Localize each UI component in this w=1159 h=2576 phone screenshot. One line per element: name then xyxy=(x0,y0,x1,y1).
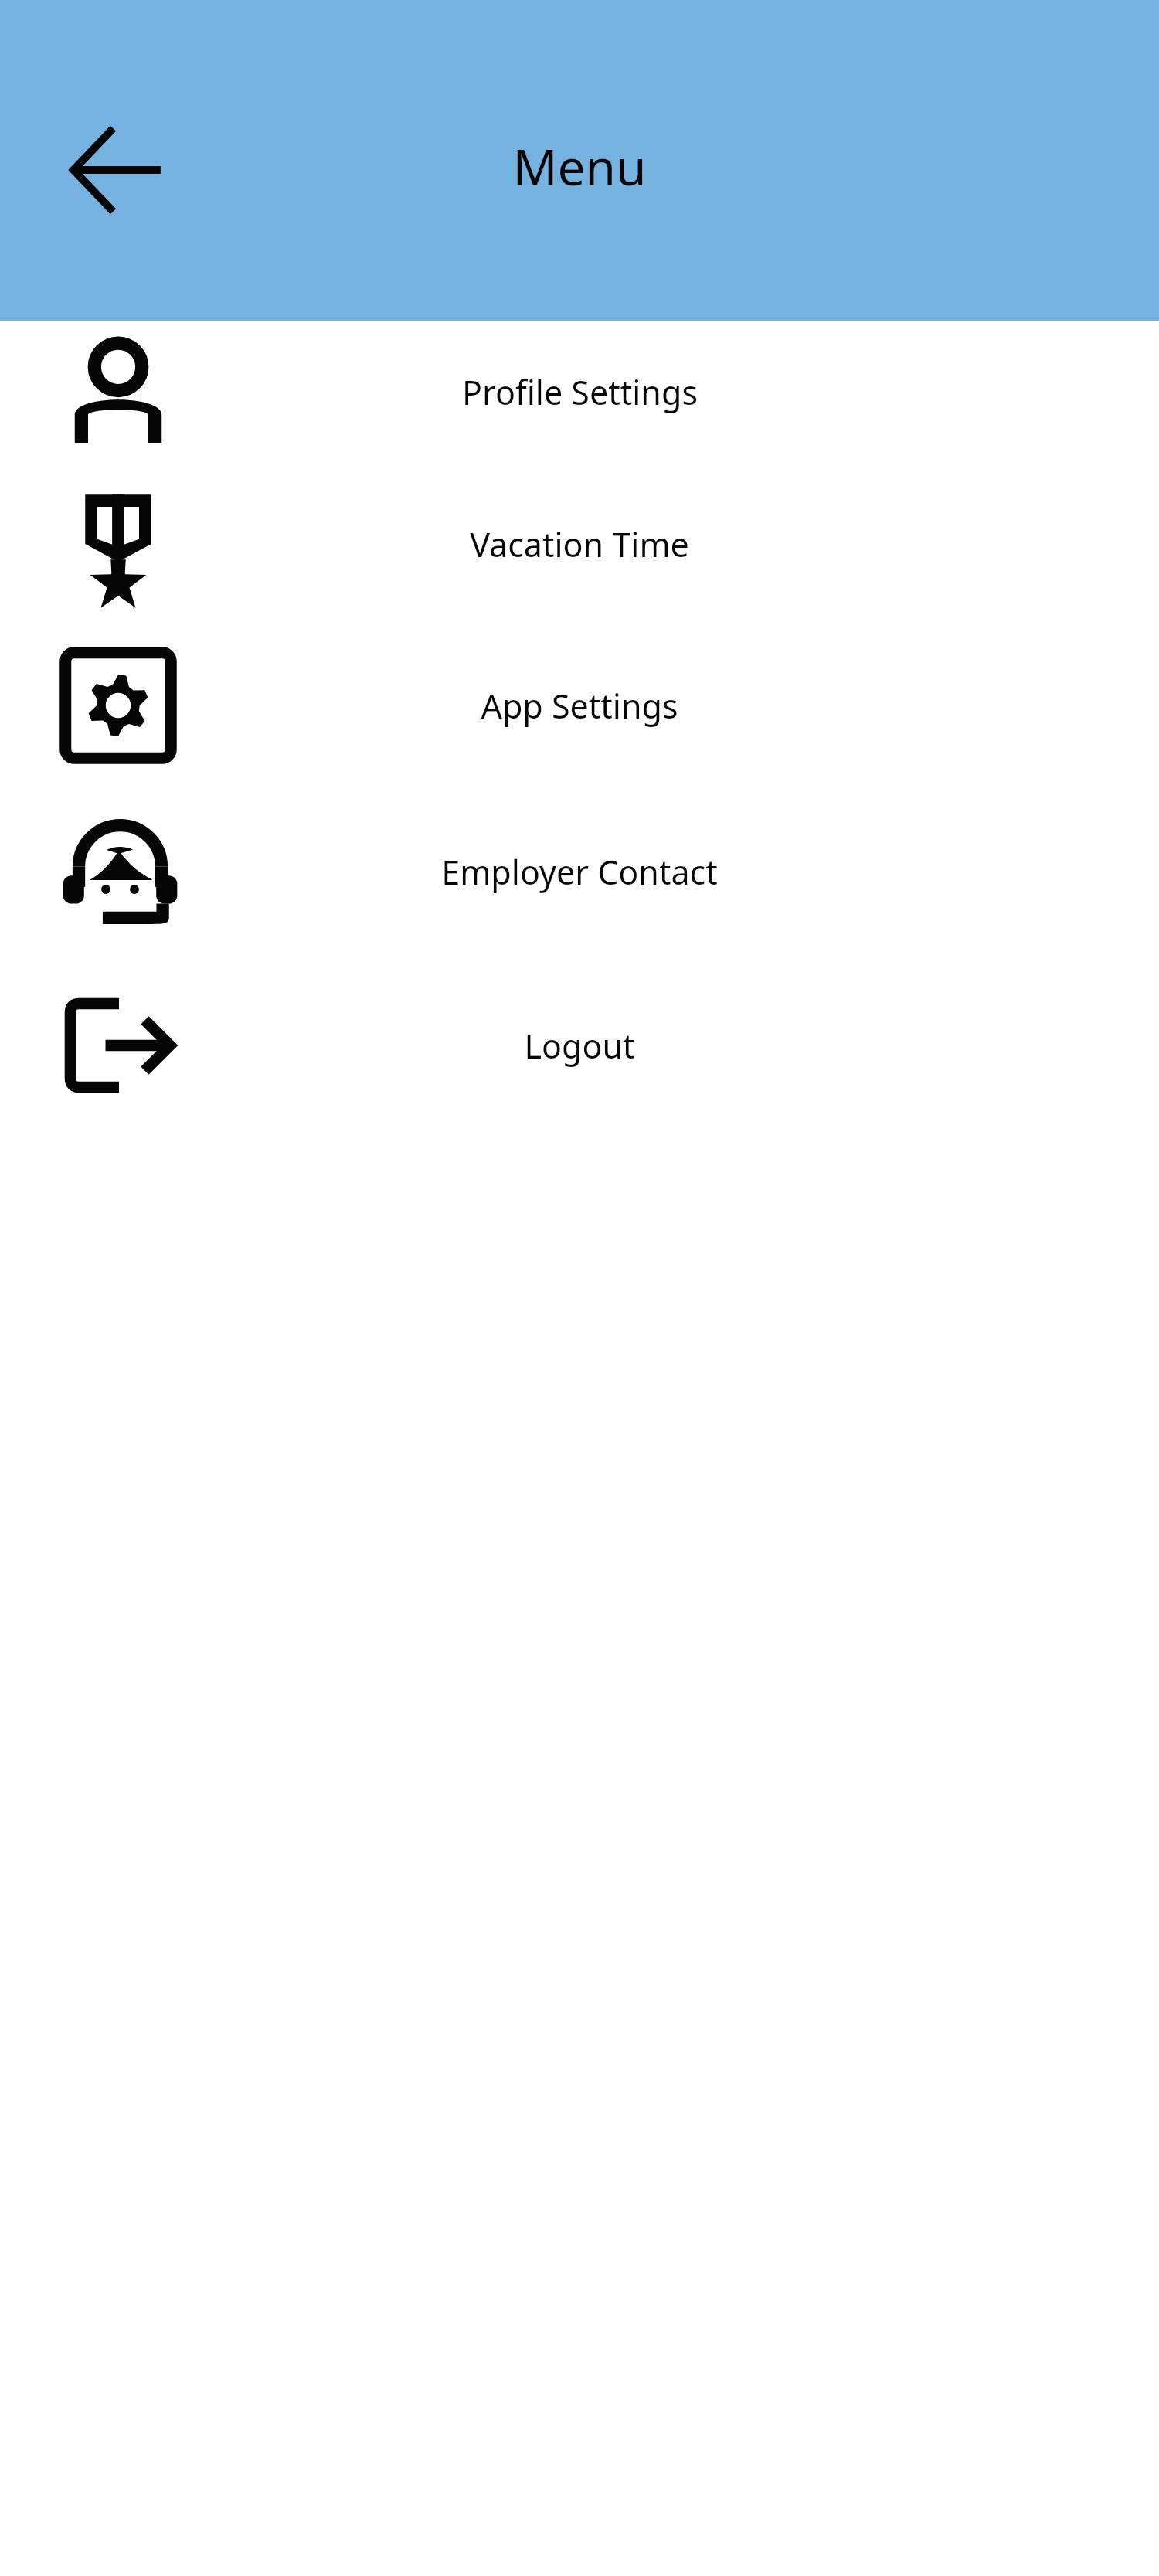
button[interactable]: Profile Settings xyxy=(0,321,1159,463)
button[interactable]: Employer Contact xyxy=(0,786,1159,957)
staticText: Vacation Time xyxy=(470,522,689,567)
staticText: Logout xyxy=(524,1023,635,1069)
staticText: Employer Contact xyxy=(441,849,718,895)
staticText: Menu xyxy=(512,133,647,200)
staticText: Profile Settings xyxy=(462,369,698,415)
button[interactable]: App Settings xyxy=(0,625,1159,786)
button[interactable]: Logout xyxy=(0,957,1159,1133)
button[interactable]: Back xyxy=(31,85,201,255)
staticText: App Settings xyxy=(481,683,678,729)
button[interactable]: Vacation Time xyxy=(0,463,1159,625)
